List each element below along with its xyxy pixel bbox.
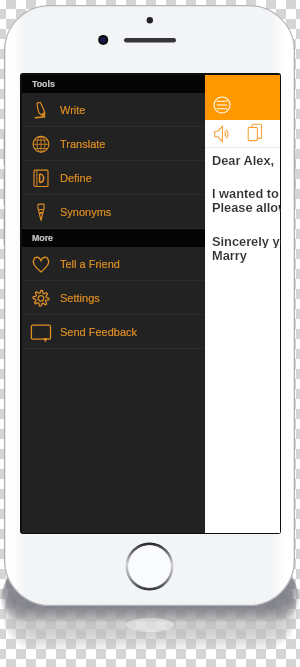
staticText: Write	[60, 104, 86, 116]
staticText: Dear Alex,	[212, 153, 275, 167]
staticText: Settings	[60, 292, 100, 304]
staticText: More	[32, 233, 54, 243]
staticText: Define	[60, 172, 92, 184]
staticText: Please allow me	[212, 200, 281, 214]
button[interactable]: Synonyms	[22, 195, 205, 229]
button[interactable]: Open navigation menu	[210, 93, 234, 117]
staticText: Synonyms	[60, 206, 112, 218]
button[interactable]: Listen	[214, 124, 232, 144]
button[interactable]: Tell a Friend	[22, 247, 205, 281]
staticText: Translate	[60, 138, 106, 150]
button[interactable]: Send Feedback	[22, 315, 205, 349]
button[interactable]: Define	[22, 161, 205, 195]
button[interactable]: Translate	[22, 127, 205, 161]
staticText: Marry	[212, 248, 247, 262]
staticText: Send Feedback	[60, 326, 138, 338]
staticText: Tools	[32, 79, 55, 89]
button[interactable]: Settings	[22, 281, 205, 315]
button[interactable]: Copy	[246, 123, 264, 145]
staticText: I wanted to express	[212, 186, 281, 200]
staticText: Sincerely yours,	[212, 234, 281, 248]
staticText: Tell a Friend	[60, 258, 120, 270]
button[interactable]: Write	[22, 93, 205, 127]
